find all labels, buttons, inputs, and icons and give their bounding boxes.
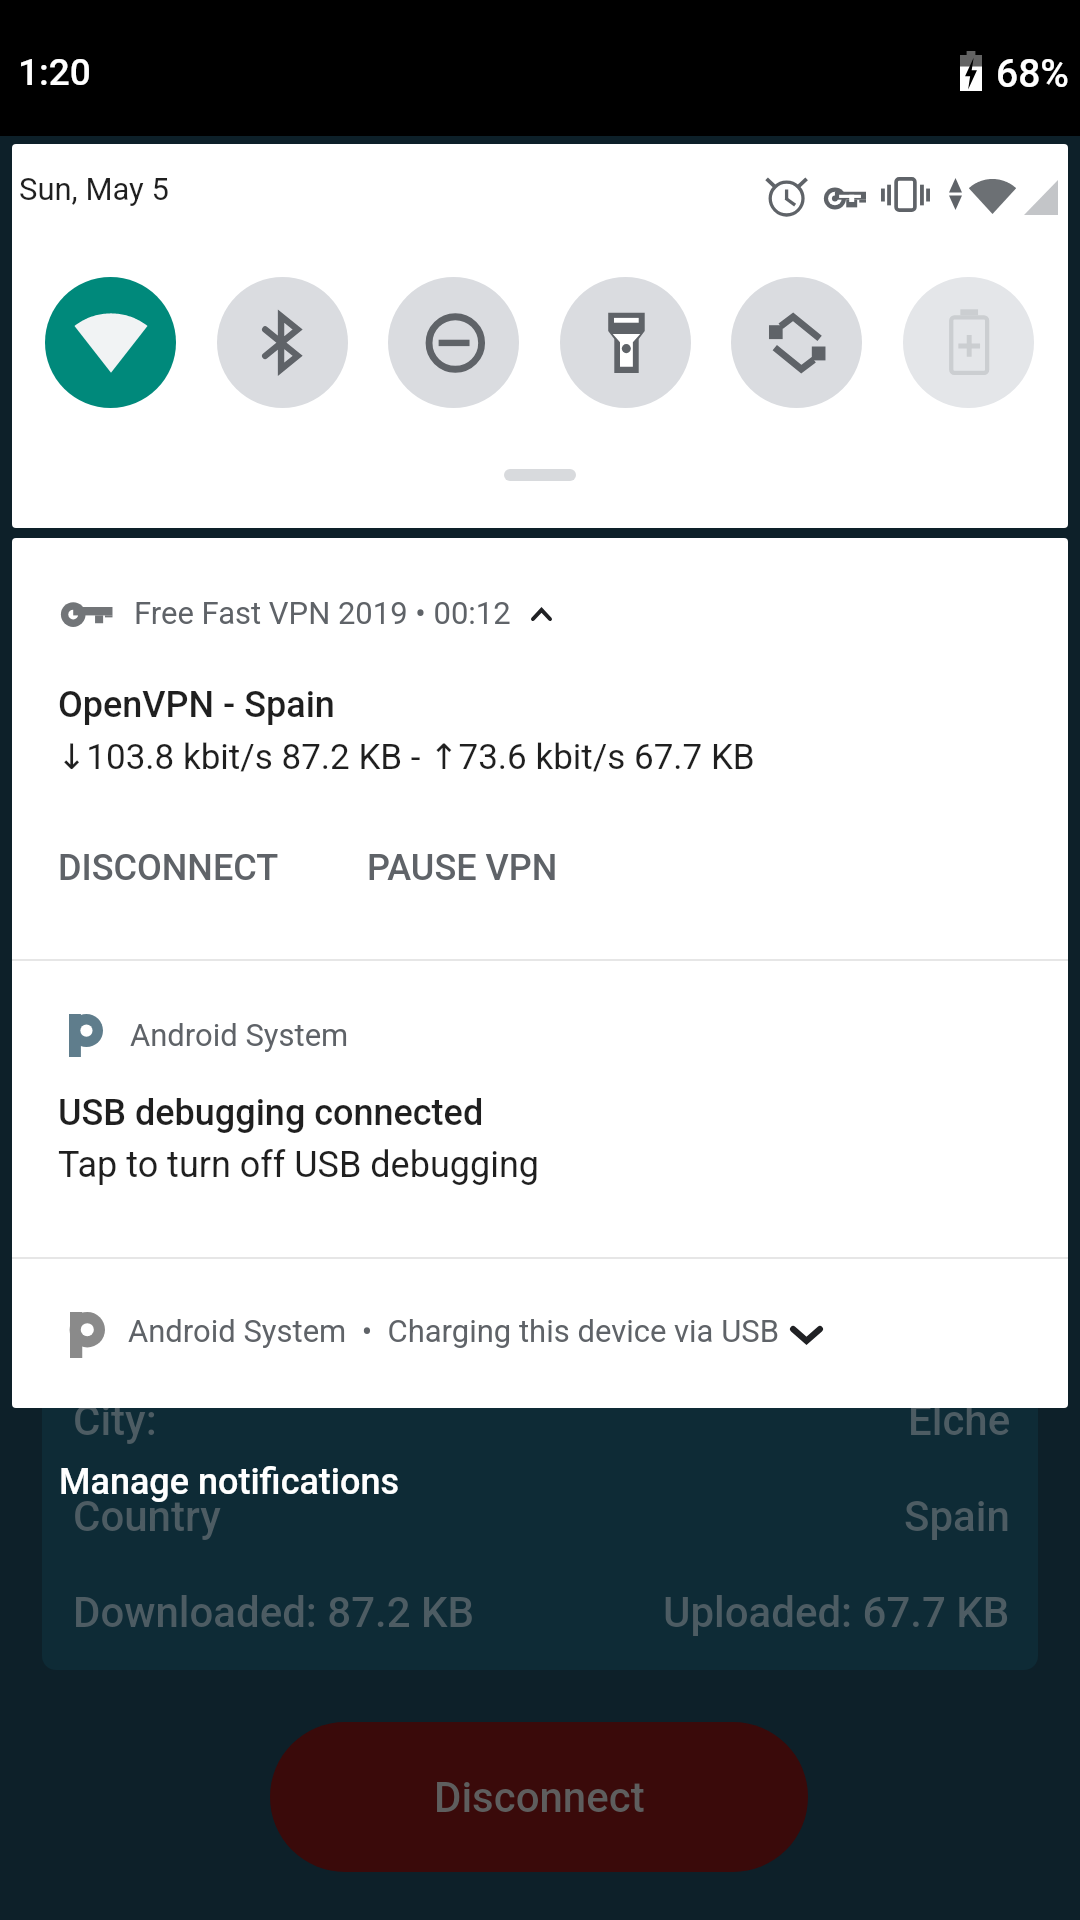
button[interactable]: Android System • Charging this device vi…	[12, 1259, 1068, 1408]
staticText: Spain	[904, 1492, 1010, 1541]
button[interactable]: Wi-Fi	[45, 277, 176, 408]
button[interactable]: Bluetooth	[217, 277, 348, 408]
staticText: Sun, May 5	[19, 171, 169, 207]
button[interactable]: Manage notifications	[59, 1461, 399, 1503]
button[interactable]: PAUSE VPN	[367, 847, 558, 889]
staticText: OpenVPN - Spain	[58, 684, 335, 726]
staticText: Android System	[130, 1017, 349, 1053]
button[interactable]: Android System	[12, 961, 1068, 1257]
staticText: Disconnect	[434, 1773, 645, 1822]
staticText: ↓103.8 kbit/s 87.2 KB - ↑73.6 kbit/s 67.…	[57, 737, 755, 778]
staticText: USB debugging connected	[58, 1092, 484, 1134]
staticText: City:	[73, 1396, 157, 1445]
button[interactable]: Flashlight	[560, 277, 691, 408]
staticText: Free Fast VPN 2019 • 00:12	[134, 595, 511, 631]
staticText: Elche	[908, 1396, 1011, 1445]
button[interactable]: Disconnect	[270, 1722, 808, 1872]
staticText: Tap to turn off USB debugging	[58, 1144, 540, 1186]
button[interactable]: Do not disturb	[388, 277, 519, 408]
button[interactable]: DISCONNECT	[58, 847, 279, 889]
staticText: 68%	[996, 51, 1070, 97]
staticText: Uploaded: 67.7 KB	[663, 1588, 1010, 1637]
button[interactable]: Auto-rotate	[731, 277, 862, 408]
button[interactable]: Battery saver	[903, 277, 1034, 408]
staticText: Android System • Charging this device vi…	[128, 1313, 779, 1349]
staticText: 1:20	[18, 51, 91, 94]
staticText: Country	[73, 1492, 221, 1541]
button[interactable]: Free Fast VPN 2019 • 00:12	[12, 538, 1068, 959]
staticText: Downloaded: 87.2 KB	[73, 1588, 475, 1637]
